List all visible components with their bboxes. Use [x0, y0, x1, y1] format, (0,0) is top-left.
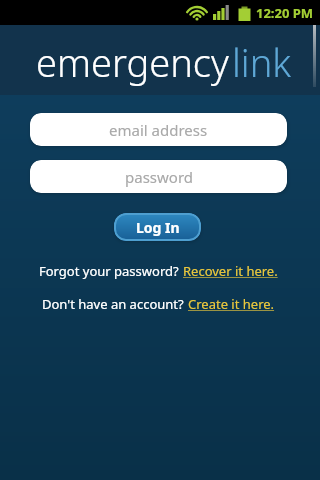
button[interactable]: Recover it here.	[183, 262, 278, 280]
button[interactable]: password	[30, 160, 287, 193]
button[interactable]: email address	[30, 113, 287, 146]
staticText: 12:20 PM	[256, 4, 314, 22]
staticText: Log In	[136, 218, 180, 237]
button[interactable]: Create it here.	[188, 295, 275, 313]
staticText: password	[125, 167, 193, 187]
staticText: emergency	[36, 36, 229, 88]
staticText: email address	[109, 120, 208, 140]
staticText: Forgot your password?	[39, 262, 183, 280]
button[interactable]: Log In	[114, 213, 201, 241]
staticText: Don't have an account?	[42, 295, 188, 313]
staticText: link	[232, 36, 292, 88]
